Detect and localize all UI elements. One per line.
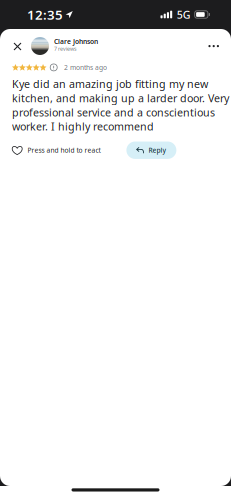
staticText: 12:35: [27, 6, 63, 23]
button[interactable]: Press and hold to react: [12, 142, 100, 159]
staticText: 2 months ago: [64, 63, 107, 72]
button[interactable]: Close: [8, 37, 27, 56]
staticText: Press and hold to react: [27, 146, 100, 155]
button[interactable]: Reply: [126, 141, 176, 159]
staticText: 5G: [177, 7, 191, 22]
staticText: Reply: [148, 146, 166, 155]
staticText: 7 reviews: [54, 45, 77, 52]
staticText: Clare Johnson: [54, 37, 98, 46]
button[interactable]: More options: [200, 37, 227, 55]
staticText: Kye did an amazing job fitting my new ki…: [12, 77, 229, 134]
